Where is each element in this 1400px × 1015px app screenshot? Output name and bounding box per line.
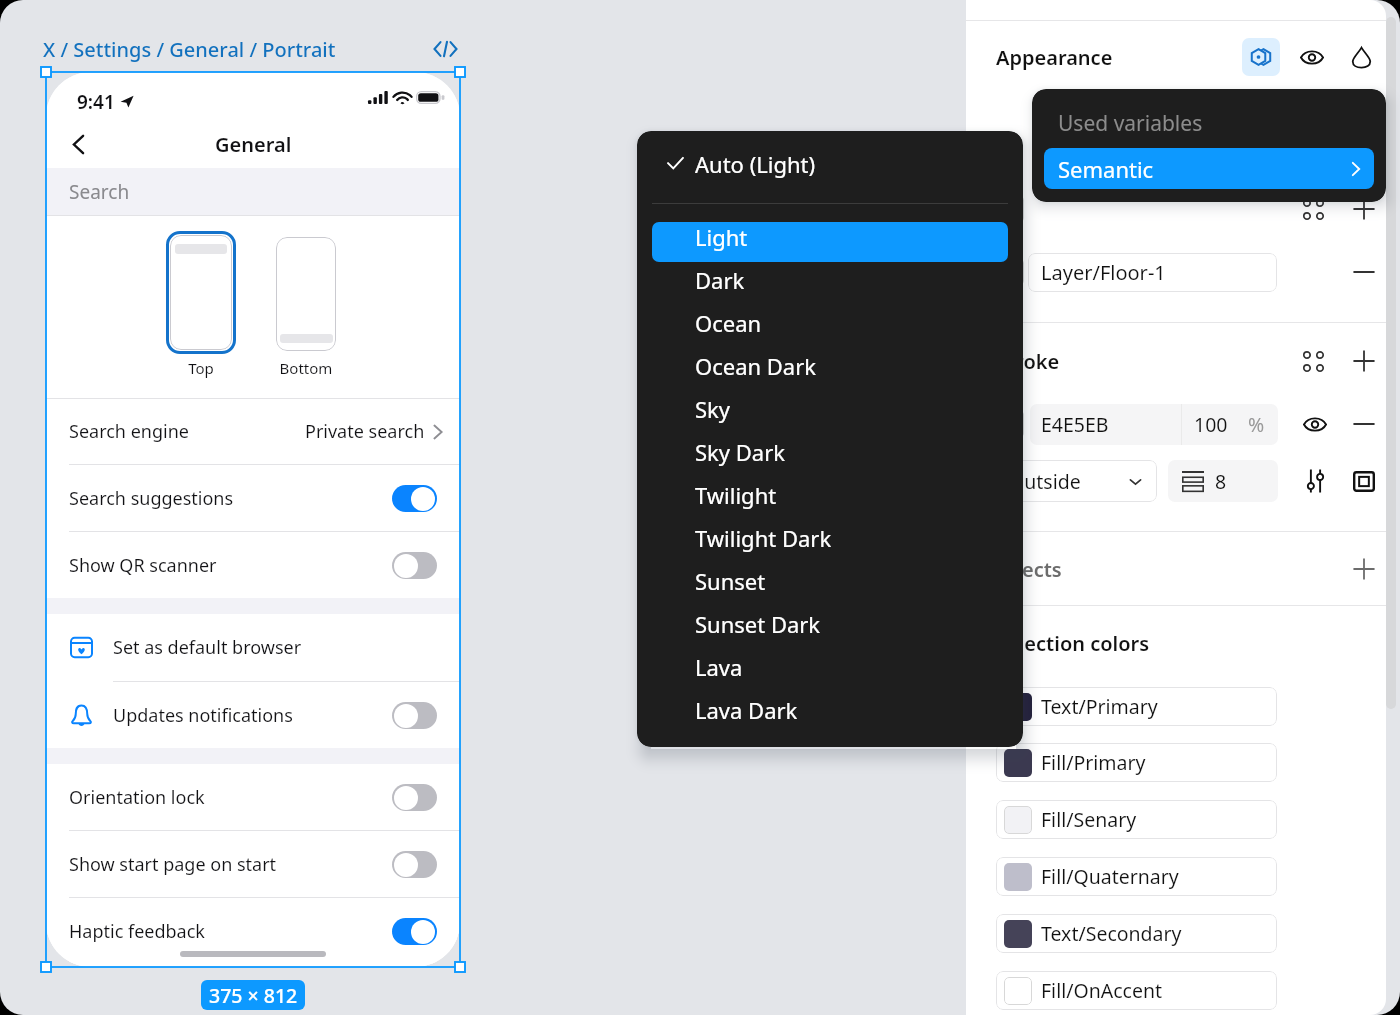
- button[interactable]: Code: [430, 34, 460, 64]
- staticText: X / Settings / General / Portrait: [43, 36, 336, 63]
- button[interactable]: [276, 237, 336, 351]
- button[interactable]: Fill/OnAccent: [996, 971, 1277, 1010]
- button[interactable]: Ocean: [652, 301, 1008, 344]
- staticText: Outside: [1009, 468, 1081, 495]
- staticText: Effects: [996, 556, 1062, 583]
- button[interactable]: Toggle: [392, 485, 437, 512]
- button[interactable]: Visibility: [1295, 40, 1329, 74]
- staticText: Show QR scanner: [69, 553, 217, 578]
- button[interactable]: Apply variable: [1298, 194, 1328, 224]
- staticText: Private search: [305, 419, 425, 444]
- button[interactable]: Sunset: [652, 559, 1008, 602]
- staticText: Lava Dark: [695, 695, 798, 725]
- button[interactable]: Toggle: [392, 851, 437, 878]
- button[interactable]: Fill/Primary: [996, 743, 1277, 782]
- staticText: Search engine: [69, 419, 189, 444]
- button[interactable]: Dark: [652, 258, 1008, 301]
- staticText: Sky Dark: [695, 437, 786, 467]
- staticText: Orientation lock: [69, 785, 205, 810]
- button[interactable]: Twilight Dark: [652, 516, 1008, 559]
- staticText: 9:41: [77, 89, 115, 115]
- staticText: Search suggestions: [69, 486, 234, 511]
- staticText: Show start page on start: [69, 852, 277, 877]
- button[interactable]: Auto (Light): [637, 140, 1023, 187]
- button[interactable]: Layer/Floor-1: [1028, 253, 1277, 292]
- button[interactable]: Show QR scanner: [46, 532, 460, 598]
- staticText: Bottom: [276, 358, 336, 378]
- staticText: Sky: [695, 394, 731, 424]
- staticText: Top: [171, 358, 231, 378]
- button[interactable]: Hide stroke: [1300, 409, 1330, 439]
- button[interactable]: Add fill: [1349, 194, 1379, 224]
- staticText: 100: [1194, 411, 1228, 438]
- button[interactable]: Toggle: [392, 702, 437, 729]
- button[interactable]: Sky: [652, 387, 1008, 430]
- button[interactable]: X / Settings / General / Portrait: [43, 36, 336, 63]
- staticText: Haptic feedback: [69, 919, 205, 944]
- button[interactable]: [166, 231, 236, 354]
- button[interactable]: Outside: [996, 460, 1157, 502]
- button[interactable]: Sky Dark: [652, 430, 1008, 473]
- staticText: Text/Secondary: [1041, 920, 1182, 947]
- button[interactable]: Search engine: [46, 399, 460, 464]
- staticText: Selection colors: [996, 630, 1150, 657]
- button[interactable]: Search suggestions: [46, 465, 460, 531]
- button[interactable]: Text/Secondary: [996, 914, 1277, 953]
- staticText: Ocean: [695, 308, 762, 338]
- staticText: Sunset Dark: [695, 609, 821, 639]
- staticText: Light: [695, 222, 748, 252]
- button[interactable]: Lava: [652, 645, 1008, 688]
- button[interactable]: 375 × 812: [201, 980, 305, 1010]
- button[interactable]: Remove stroke: [1349, 409, 1379, 439]
- staticText: Fill/Quaternary: [1041, 863, 1179, 890]
- button[interactable]: Semantic: [1044, 148, 1374, 189]
- button[interactable]: Updates notifications: [46, 682, 460, 748]
- button[interactable]: Text/Primary: [996, 687, 1277, 726]
- staticText: Dark: [695, 265, 745, 295]
- button[interactable]: Toggle: [392, 918, 437, 945]
- button[interactable]: Ocean Dark: [652, 344, 1008, 387]
- staticText: Stroke: [996, 348, 1060, 375]
- staticText: Semantic: [1058, 154, 1154, 184]
- button[interactable]: Color picker: [1344, 40, 1378, 74]
- button[interactable]: Lava Dark: [652, 688, 1008, 731]
- button[interactable]: E4E5EB: [1030, 404, 1278, 445]
- staticText: General: [215, 131, 292, 158]
- button[interactable]: Stroke style: [1349, 466, 1379, 496]
- staticText: Twilight Dark: [695, 523, 832, 553]
- button[interactable]: Add effect: [1349, 554, 1379, 584]
- staticText: Used variables: [1058, 109, 1203, 138]
- button[interactable]: Variables: [1242, 38, 1280, 76]
- button[interactable]: Advanced stroke: [1300, 466, 1330, 496]
- staticText: 8: [1215, 468, 1227, 495]
- staticText: E4E5EB: [1041, 411, 1109, 438]
- button[interactable]: Show start page on start: [46, 831, 460, 897]
- button[interactable]: Toggle: [392, 552, 437, 579]
- staticText: %: [1248, 411, 1265, 438]
- button[interactable]: Remove fill: [1349, 257, 1379, 287]
- button[interactable]: Toggle: [392, 784, 437, 811]
- button[interactable]: 8: [1168, 460, 1278, 502]
- button[interactable]: Light: [652, 215, 1008, 258]
- button[interactable]: Orientation lock: [46, 764, 460, 830]
- button[interactable]: Twilight: [652, 473, 1008, 516]
- staticText: Set as default browser: [113, 635, 302, 660]
- staticText: Appearance: [996, 44, 1113, 71]
- staticText: Updates notifications: [113, 703, 293, 728]
- staticText: Lava: [695, 652, 743, 682]
- staticText: Ocean Dark: [695, 351, 817, 381]
- staticText: Fill/OnAccent: [1041, 977, 1163, 1004]
- button[interactable]: Add stroke: [1349, 346, 1379, 376]
- staticText: Fill/Primary: [1041, 749, 1146, 776]
- button[interactable]: Fill/Senary: [996, 800, 1277, 839]
- button[interactable]: Haptic feedback: [46, 898, 460, 964]
- staticText: Text/Primary: [1041, 693, 1158, 720]
- button[interactable]: Stroke variable: [1298, 346, 1328, 376]
- staticText: 375 × 812: [209, 982, 298, 1009]
- button[interactable]: Set as default browser: [46, 614, 460, 681]
- button[interactable]: Back: [54, 120, 102, 168]
- staticText: Sunset: [695, 566, 766, 596]
- button[interactable]: Sunset Dark: [652, 602, 1008, 645]
- button[interactable]: Fill/Quaternary: [996, 857, 1277, 896]
- staticText: Twilight: [695, 480, 777, 510]
